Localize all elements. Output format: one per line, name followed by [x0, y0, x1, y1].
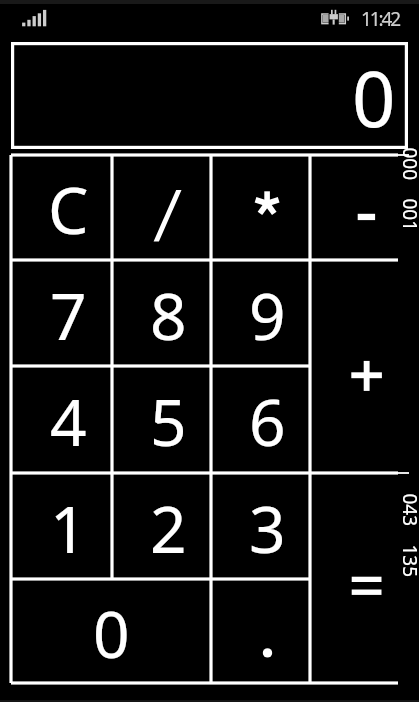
- button[interactable]: 1: [11, 473, 112, 579]
- staticText: 11:42: [361, 6, 400, 32]
- button[interactable]: Minus: [310, 155, 398, 260]
- staticText: 8: [150, 272, 187, 359]
- staticText: 5: [150, 378, 187, 465]
- staticText: 6: [249, 378, 286, 465]
- button[interactable]: 6: [211, 366, 310, 473]
- button[interactable]: Decimal point: [211, 579, 310, 683]
- button[interactable]: 0: [11, 579, 211, 683]
- staticText: 001: [396, 198, 419, 231]
- button[interactable]: C: [11, 155, 112, 260]
- button[interactable]: 8: [112, 260, 211, 366]
- button[interactable]: 7: [11, 260, 112, 366]
- staticText: 0: [352, 46, 396, 150]
- staticText: 2: [150, 485, 187, 572]
- button[interactable]: Plus: [310, 260, 398, 473]
- staticText: 3: [249, 485, 286, 572]
- button[interactable]: Multiply: [211, 155, 310, 260]
- staticText: C: [48, 166, 89, 253]
- button[interactable]: Signal strength: [16, 4, 56, 30]
- staticText: 0: [93, 590, 130, 677]
- button[interactable]: 9: [211, 260, 310, 366]
- staticText: 9: [249, 272, 286, 359]
- staticText: 4: [50, 378, 87, 465]
- button[interactable]: 2: [112, 473, 211, 579]
- staticText: 7: [50, 272, 87, 359]
- staticText: 135: [396, 544, 419, 577]
- button[interactable]: 5: [112, 366, 211, 473]
- button[interactable]: Battery charging: [316, 6, 354, 28]
- button[interactable]: 0: [11, 42, 408, 149]
- button[interactable]: 3: [211, 473, 310, 579]
- staticText: 1: [50, 485, 87, 572]
- staticText: 043: [396, 493, 419, 526]
- staticText: 000: [396, 147, 419, 180]
- button[interactable]: 4: [11, 366, 112, 473]
- button[interactable]: Equals: [310, 473, 398, 683]
- button[interactable]: Divide: [112, 155, 211, 260]
